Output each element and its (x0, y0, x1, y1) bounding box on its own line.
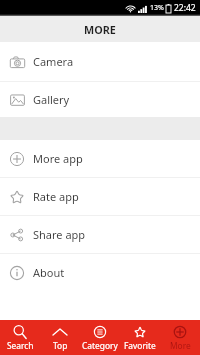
button[interactable]: Camera (0, 42, 200, 81)
button[interactable]: About (0, 254, 200, 291)
button[interactable]: Top (40, 320, 80, 355)
button[interactable]: More (160, 320, 200, 355)
button[interactable]: Search (0, 320, 40, 355)
staticText: More app (33, 151, 83, 166)
staticText: Share app (33, 227, 86, 242)
staticText: Favorite (124, 340, 156, 351)
staticText: About (33, 265, 65, 280)
button[interactable]: Gallery (0, 82, 200, 117)
staticText: Category (82, 340, 118, 351)
button[interactable]: More app (0, 140, 200, 177)
staticText: Rate app (33, 189, 79, 204)
button[interactable]: Favorite (120, 320, 160, 355)
button[interactable]: Share app (0, 216, 200, 253)
staticText: Camera (33, 54, 74, 69)
staticText: 22:42 (174, 2, 196, 14)
staticText: 13% (150, 3, 164, 13)
staticText: MORE (84, 22, 116, 37)
staticText: Gallery (33, 92, 70, 107)
staticText: Top (53, 340, 68, 351)
staticText: Search (7, 340, 34, 351)
button[interactable]: Rate app (0, 178, 200, 215)
button[interactable]: Category (80, 320, 120, 355)
staticText: More (170, 340, 191, 351)
